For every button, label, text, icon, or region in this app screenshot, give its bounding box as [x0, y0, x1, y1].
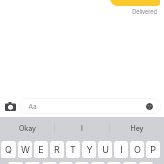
button[interactable]: T [66, 141, 80, 158]
staticText: E [38, 144, 44, 155]
staticText: O [134, 144, 141, 155]
button[interactable]: Y [82, 141, 96, 158]
button[interactable]: K [123, 162, 137, 164]
button[interactable]: I [55, 117, 109, 139]
staticText: Aa [28, 103, 37, 111]
staticText: Hey [130, 124, 144, 132]
staticText: Okay [19, 124, 36, 132]
button[interactable]: Hey [110, 117, 164, 139]
button[interactable]: R [50, 141, 64, 158]
button[interactable]: F [59, 162, 73, 164]
staticText: W [21, 144, 30, 155]
button[interactable]: H [91, 162, 105, 164]
button[interactable]: U [98, 141, 112, 158]
staticText: I [120, 144, 123, 155]
button[interactable]: G [75, 162, 89, 164]
staticText: P [150, 144, 156, 155]
button[interactable]: S [25, 162, 40, 164]
staticText: Y [86, 144, 93, 155]
staticText: I [81, 124, 83, 132]
button[interactable]: L [139, 162, 153, 164]
button[interactable]: Camera [4, 100, 17, 112]
staticText: Delivered [132, 9, 157, 16]
staticText: Q [5, 144, 12, 155]
button[interactable]: J [107, 162, 121, 164]
button[interactable]: W [18, 141, 32, 158]
button[interactable]: P [146, 141, 160, 158]
button[interactable]: I [114, 141, 128, 158]
button[interactable]: Stickers [146, 103, 153, 110]
staticText: R [54, 144, 60, 155]
staticText: T [70, 144, 76, 155]
staticText: U [102, 144, 109, 155]
button[interactable]: Q [1, 141, 16, 158]
button[interactable]: Okay [0, 117, 54, 139]
button[interactable]: Sent message [110, 0, 160, 6]
button[interactable]: A [8, 162, 23, 164]
button[interactable]: O [130, 141, 144, 158]
button[interactable]: Aa [19, 98, 161, 114]
button[interactable]: D [42, 162, 57, 164]
button[interactable]: E [34, 141, 48, 158]
